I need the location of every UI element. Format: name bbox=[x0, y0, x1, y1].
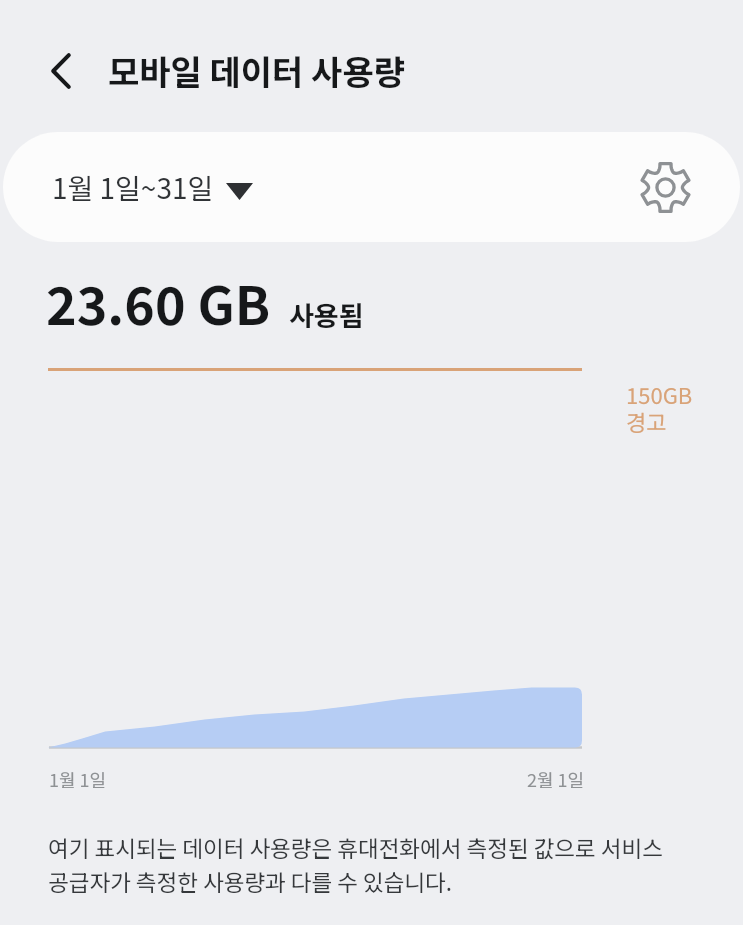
button[interactable]: Settings bbox=[635, 157, 695, 217]
staticText: 1월 1일 bbox=[49, 766, 107, 792]
staticText: 사용됨 bbox=[289, 295, 364, 334]
button[interactable]: 1월 1일~31일 bbox=[3, 132, 740, 242]
staticText: 여기 표시되는 데이터 사용량은 휴대전화에서 측정된 값으로 서비스 공급자가… bbox=[48, 831, 684, 898]
staticText: 23.60 GB bbox=[46, 265, 271, 340]
staticText: 모바일 데이터 사용량 bbox=[108, 46, 405, 95]
staticText: 150GB bbox=[626, 378, 693, 410]
staticText: 2월 1일 bbox=[527, 766, 585, 792]
staticText: 1월 1일~31일 bbox=[52, 167, 214, 208]
button[interactable]: Back bbox=[26, 36, 96, 106]
staticText: 경고 bbox=[626, 405, 667, 437]
